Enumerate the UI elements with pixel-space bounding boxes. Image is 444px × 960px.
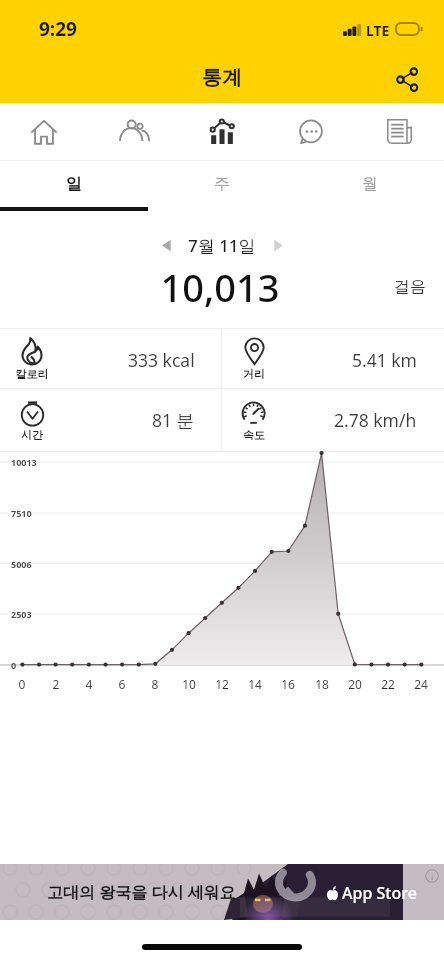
button[interactable]: Next day <box>260 227 296 263</box>
staticText: 속도 <box>232 428 276 442</box>
button[interactable]: 주 <box>148 161 296 211</box>
staticText: 6 <box>107 676 137 692</box>
button[interactable]: 거리 <box>222 329 444 389</box>
button[interactable]: Friends <box>88 103 177 160</box>
staticText: 16 <box>273 676 303 692</box>
staticText: 칼로리 <box>10 367 54 381</box>
button[interactable]: Messages <box>266 103 355 160</box>
staticText: 0 <box>7 676 37 692</box>
staticText: 2503 <box>11 608 51 620</box>
staticText: 10013 <box>11 456 51 468</box>
staticText: 시간 <box>10 428 54 442</box>
staticText: 7510 <box>11 507 51 519</box>
button[interactable]: 칼로리 <box>0 329 222 389</box>
button[interactable]: 고대의 왕국을 다시 세워요 <box>0 864 444 920</box>
staticText: 20 <box>340 676 370 692</box>
staticText: 333 kcal <box>128 348 195 372</box>
button[interactable]: 시간 <box>0 389 222 449</box>
staticText: 24 <box>406 676 436 692</box>
staticText: 9:29 <box>39 16 77 42</box>
button[interactable]: Ad info <box>425 869 439 883</box>
button[interactable]: Statistics <box>177 103 266 160</box>
staticText: 81 분 <box>152 408 195 432</box>
staticText: 14 <box>240 676 270 692</box>
button[interactable]: Home <box>0 103 88 160</box>
staticText: 거리 <box>232 367 276 381</box>
staticText: 통계 <box>202 65 242 90</box>
staticText: 일 <box>66 174 82 194</box>
staticText: i <box>431 870 434 882</box>
staticText: 걸음 <box>394 277 426 297</box>
button[interactable]: News <box>355 103 444 160</box>
staticText: 5.41 km <box>352 348 417 372</box>
staticText: 4 <box>74 676 104 692</box>
staticText: 0 <box>11 659 51 671</box>
button[interactable]: Previous day <box>148 227 184 263</box>
staticText: 2 <box>41 676 71 692</box>
staticText: 12 <box>207 676 237 692</box>
staticText: LTE <box>366 21 390 40</box>
staticText: 22 <box>373 676 403 692</box>
button[interactable]: 월 <box>296 161 444 211</box>
button[interactable]: 속도 <box>222 389 444 449</box>
button[interactable]: 일 <box>0 161 148 211</box>
staticText: 5006 <box>11 558 51 570</box>
staticText: 월 <box>362 174 378 194</box>
staticText: 10,013 <box>0 261 442 313</box>
staticText: 18 <box>307 676 337 692</box>
staticText: 7월 11일 <box>188 234 256 257</box>
staticText: 고대의 왕국을 다시 세워요 <box>47 881 236 903</box>
staticText: 10 <box>174 676 204 692</box>
staticText: 8 <box>140 676 170 692</box>
staticText: 주 <box>214 174 230 194</box>
button[interactable]: Share <box>386 57 429 100</box>
staticText: 2.78 km/h <box>334 408 417 432</box>
staticText: App Store <box>342 882 417 904</box>
